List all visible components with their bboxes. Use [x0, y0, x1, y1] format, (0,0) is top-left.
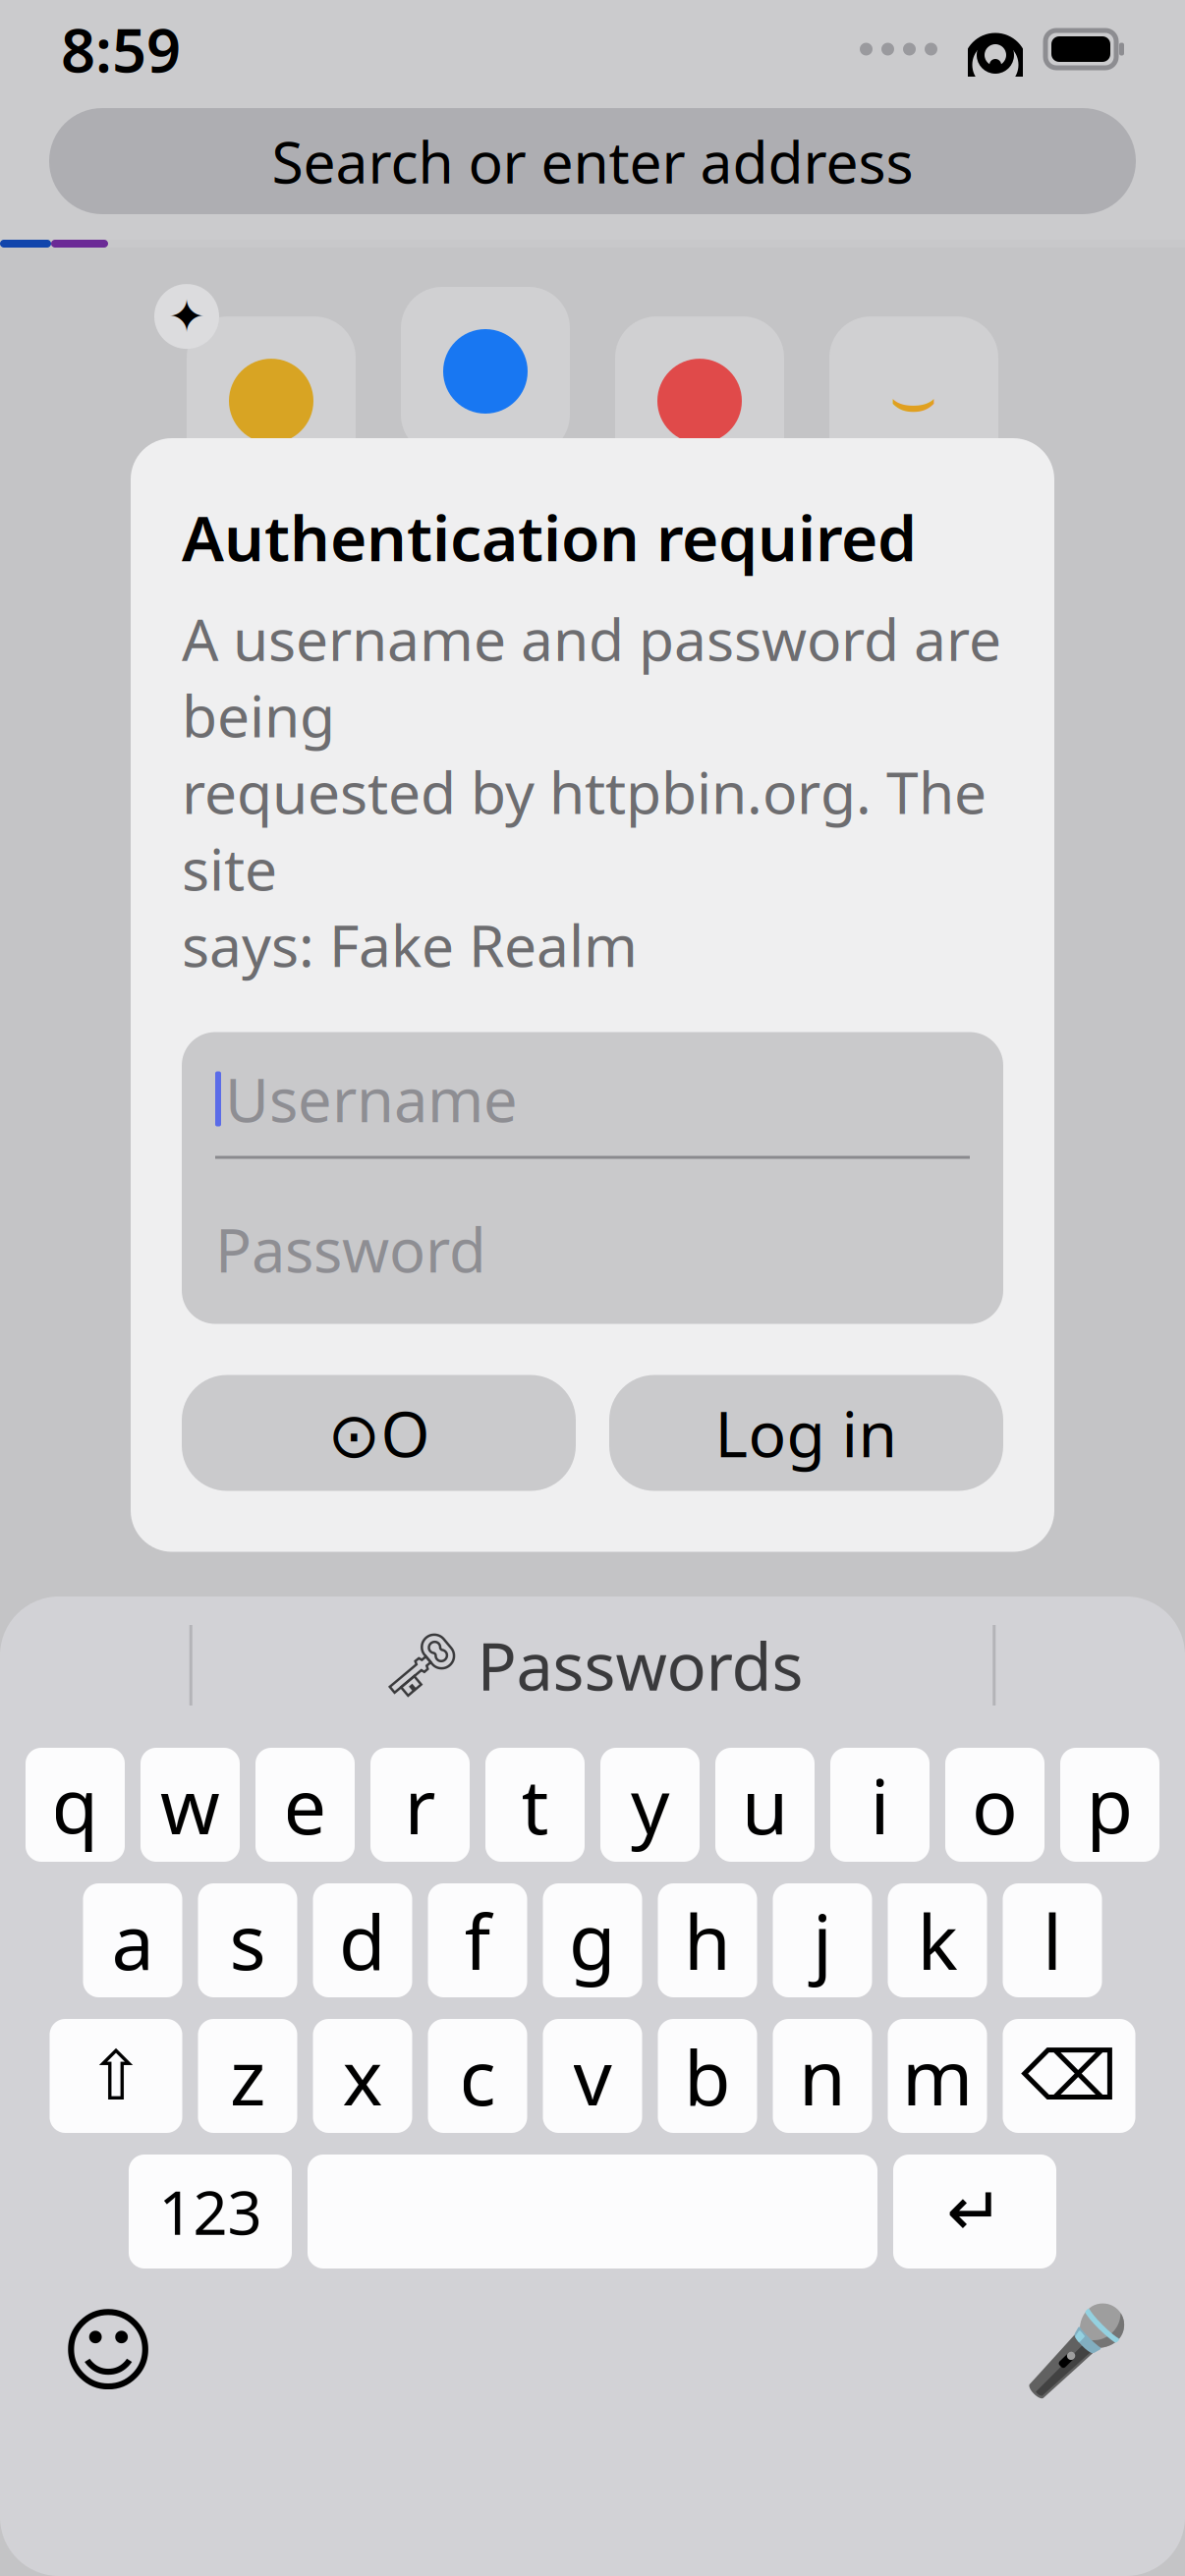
staticText: z: [230, 2026, 265, 2126]
staticText: Wikipedia: [173, 826, 369, 944]
staticText: d: [339, 1890, 386, 1991]
button[interactable]: d: [313, 1883, 412, 1997]
staticText: Amazon: [829, 503, 998, 562]
staticText: i: [870, 1754, 890, 1855]
staticText: ↵: [946, 2173, 1003, 2250]
button[interactable]: Dictation: [1028, 2302, 1126, 2400]
staticText: Passwords: [477, 1622, 803, 1709]
staticText: b: [684, 2026, 731, 2126]
staticText: v: [573, 2026, 612, 2126]
button[interactable]: Shift: [50, 2019, 182, 2133]
staticText: y: [631, 1754, 669, 1855]
staticText: o: [972, 1754, 1018, 1855]
button[interactable]: u: [715, 1748, 815, 1862]
button[interactable]: k: [888, 1883, 987, 1997]
staticText: 🎤: [1023, 2302, 1131, 2400]
button[interactable]: w: [141, 1748, 240, 1862]
staticText: ⌣: [889, 364, 939, 438]
staticText: j: [813, 1890, 832, 1991]
button[interactable]: r: [370, 1748, 470, 1862]
staticText: Password: [215, 1209, 486, 1289]
staticText: h: [684, 1890, 731, 1991]
staticText: Google: [196, 503, 346, 562]
button[interactable]: e: [255, 1748, 355, 1862]
staticText: W: [235, 671, 308, 776]
staticText: Log in: [715, 1391, 898, 1475]
staticText: ✦: [168, 291, 205, 342]
button[interactable]: h: [658, 1883, 757, 1997]
staticText: Search or enter address: [272, 123, 913, 199]
staticText: ⊙O: [328, 1391, 430, 1475]
button[interactable]: Delete: [1003, 2019, 1135, 2133]
staticText: a: [112, 1890, 154, 1991]
staticText: e: [283, 1754, 327, 1855]
staticText: g: [569, 1890, 616, 1991]
staticText: r: [404, 1754, 436, 1855]
staticText: A username and password are being reques…: [182, 600, 1001, 983]
button[interactable]: ⊙O: [182, 1375, 576, 1491]
staticText: n: [799, 2026, 846, 2126]
button[interactable]: 🗝: [382, 1622, 803, 1709]
button[interactable]: m: [888, 2019, 987, 2133]
button[interactable]: j: [773, 1883, 872, 1997]
button[interactable]: s: [198, 1883, 297, 1997]
button[interactable]: c: [428, 2019, 527, 2133]
button[interactable]: f: [428, 1883, 527, 1997]
button[interactable]: n: [773, 2019, 872, 2133]
staticText: Yahoo: [636, 503, 763, 562]
staticText: ☺: [60, 2299, 156, 2403]
button[interactable]: l: [1003, 1883, 1102, 1997]
button[interactable]: 123: [129, 2155, 292, 2268]
button[interactable]: v: [543, 2019, 642, 2133]
button[interactable]: y: [600, 1748, 700, 1862]
button[interactable]: o: [945, 1748, 1044, 1862]
staticText: 🗝: [382, 1629, 461, 1701]
button[interactable]: Log in: [609, 1375, 1003, 1491]
staticText: u: [741, 1754, 789, 1855]
staticText: c: [459, 2026, 496, 2126]
staticText: l: [1043, 1890, 1062, 1991]
staticText: q: [52, 1754, 99, 1855]
staticText: p: [1086, 1754, 1133, 1855]
button[interactable]: i: [830, 1748, 930, 1862]
button[interactable]: a: [83, 1883, 182, 1997]
button[interactable]: Search or enter address: [49, 108, 1136, 214]
staticText: 123: [159, 2172, 262, 2251]
staticText: x: [342, 2026, 383, 2126]
staticText: s: [229, 1890, 266, 1991]
button[interactable]: z: [198, 2019, 297, 2133]
staticText: Username: [225, 1059, 518, 1139]
staticText: t: [521, 1754, 549, 1855]
staticText: 8:59: [61, 9, 181, 89]
staticText: k: [917, 1890, 958, 1991]
button[interactable]: return: [893, 2155, 1056, 2268]
button[interactable]: g: [543, 1883, 642, 1997]
button[interactable]: Emoji: [59, 2302, 157, 2400]
button[interactable]: b: [658, 2019, 757, 2133]
staticText: w: [160, 1754, 220, 1855]
button[interactable]: x: [313, 2019, 412, 2133]
staticText: Authentication required: [182, 495, 917, 579]
staticText: f: [464, 1890, 491, 1991]
button[interactable]: t: [485, 1748, 585, 1862]
staticText: ⇧: [87, 2037, 144, 2115]
staticText: m: [902, 2026, 973, 2126]
button[interactable]: p: [1060, 1748, 1159, 1862]
button[interactable]: q: [26, 1748, 125, 1862]
staticText: Facebook: [390, 474, 581, 592]
staticText: ⌫: [1021, 2037, 1117, 2115]
